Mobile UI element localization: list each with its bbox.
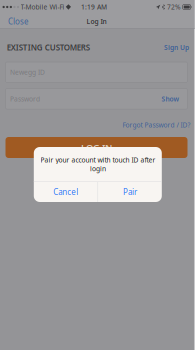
staticText: Cancel bbox=[53, 187, 78, 197]
staticText: T-Mobile Wi-Fi bbox=[20, 2, 64, 11]
button[interactable]: Sign Up bbox=[160, 40, 193, 55]
staticText: Pair bbox=[123, 187, 137, 197]
staticText: LOG IN bbox=[81, 141, 112, 154]
button[interactable]: Pair bbox=[98, 182, 162, 202]
button[interactable]: LOG IN bbox=[5, 137, 187, 158]
button[interactable]: Forgot Password / ID? bbox=[118, 118, 194, 132]
staticText: Pair your account with touch ID after lo… bbox=[40, 155, 155, 173]
staticText: 1:19 AM bbox=[81, 3, 107, 11]
staticText: Newegg ID bbox=[10, 68, 45, 77]
staticText: Log In bbox=[86, 17, 106, 26]
button[interactable]: Close bbox=[3, 13, 34, 30]
staticText: Forgot Password / ID? bbox=[122, 121, 190, 129]
staticText: Password bbox=[10, 94, 40, 103]
staticText: Close bbox=[8, 16, 29, 27]
staticText: Sign Up bbox=[164, 43, 189, 52]
staticText: Show bbox=[161, 94, 179, 103]
staticText: 72% bbox=[167, 3, 181, 11]
staticText: EXISTING CUSTOMERS bbox=[7, 42, 90, 53]
button[interactable]: Cancel bbox=[34, 182, 98, 202]
button[interactable]: Show bbox=[158, 91, 182, 106]
